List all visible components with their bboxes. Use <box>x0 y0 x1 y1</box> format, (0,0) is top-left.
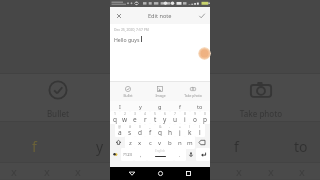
button[interactable]: y <box>130 101 150 111</box>
button[interactable]: Enter <box>196 148 210 161</box>
staticText: Bullet <box>28 108 88 119</box>
button[interactable]: @ <box>115 124 125 137</box>
button[interactable]: 7 <box>170 111 180 124</box>
staticText: , <box>140 152 142 159</box>
staticText: n <box>178 139 182 147</box>
staticText: i <box>184 115 186 124</box>
staticText: 1 <box>114 111 116 116</box>
button[interactable]: 1 <box>110 111 120 124</box>
staticText: Hello guys <box>114 36 140 43</box>
staticText: _ <box>149 124 151 129</box>
button[interactable]: Emoji <box>110 148 121 161</box>
staticText: & <box>159 124 162 129</box>
staticText: w <box>122 115 128 124</box>
button[interactable]: Close <box>112 9 125 22</box>
button[interactable]: 5 <box>150 111 160 124</box>
staticText: d <box>138 128 142 137</box>
button[interactable]: I <box>110 101 130 111</box>
staticText: v <box>158 139 162 147</box>
staticText: + <box>179 124 181 129</box>
staticText: - <box>169 124 171 129</box>
button[interactable]: b <box>165 136 175 149</box>
staticText: e <box>133 115 137 124</box>
button[interactable]: , <box>134 148 147 161</box>
button[interactable]: c <box>145 136 155 149</box>
button[interactable]: Voice input <box>186 148 196 161</box>
button[interactable]: $ <box>135 124 145 137</box>
staticText: s <box>128 128 132 137</box>
button[interactable]: x <box>135 136 145 149</box>
button[interactable]: 6 <box>160 111 170 124</box>
button[interactable]: # <box>125 124 135 137</box>
staticText: to <box>197 103 203 110</box>
button[interactable]: m <box>185 136 195 149</box>
staticText: . <box>179 152 181 159</box>
button[interactable]: Recents <box>182 167 195 180</box>
button[interactable]: v <box>155 136 165 149</box>
button[interactable]: Take photo <box>178 86 208 101</box>
staticText: b <box>168 139 172 147</box>
staticText: 3 <box>134 111 136 116</box>
button[interactable]: 0 <box>200 111 210 124</box>
button[interactable]: _ <box>145 124 155 137</box>
staticText: y <box>163 115 167 124</box>
button[interactable]: z <box>125 136 135 149</box>
button[interactable]: ?123 <box>121 148 134 161</box>
button[interactable]: to <box>190 101 210 111</box>
button[interactable]: n <box>175 136 185 149</box>
staticText: @ <box>118 124 122 129</box>
staticText: f <box>234 137 239 156</box>
button[interactable]: . <box>174 148 186 161</box>
staticText: # <box>129 124 132 129</box>
staticText: p <box>203 115 207 124</box>
staticText: Take photo <box>231 108 291 119</box>
button[interactable]: Backspace <box>195 136 209 149</box>
staticText: 7 <box>174 111 176 116</box>
button[interactable]: & <box>155 124 165 137</box>
button[interactable]: 3 <box>130 111 140 124</box>
staticText: Take photo <box>184 93 202 98</box>
staticText: g <box>158 103 162 110</box>
staticText: ?123 <box>123 152 133 158</box>
staticText: x <box>75 164 81 179</box>
button[interactable]: Image <box>145 86 175 101</box>
staticText: 2 <box>124 111 126 116</box>
staticText: Bullet <box>123 93 133 98</box>
button[interactable]: - <box>165 124 175 137</box>
staticText: x <box>138 139 142 147</box>
staticText: j <box>179 128 181 137</box>
staticText: x <box>236 164 242 179</box>
staticText: m <box>187 139 193 147</box>
staticText: 0 <box>204 111 206 116</box>
button[interactable]: Back <box>125 167 138 180</box>
button[interactable]: 8 <box>180 111 190 124</box>
staticText: a <box>118 128 122 137</box>
staticText: ) <box>199 124 201 129</box>
button[interactable]: Save <box>195 9 208 22</box>
button[interactable]: Space <box>147 148 174 161</box>
button[interactable]: 2 <box>120 111 130 124</box>
staticText: 9 <box>194 111 196 116</box>
staticText: z <box>129 139 132 147</box>
button[interactable]: + <box>175 124 185 137</box>
button[interactable]: 4 <box>140 111 150 124</box>
staticText: x <box>268 164 274 179</box>
staticText: I <box>119 103 121 110</box>
staticText: to <box>294 137 308 156</box>
staticText: 8 <box>184 111 186 116</box>
staticText: 4 <box>144 111 146 116</box>
button[interactable]: Bullet <box>113 86 143 101</box>
button[interactable]: Home <box>154 167 167 180</box>
button[interactable]: Add <box>198 47 211 60</box>
staticText: x <box>11 164 17 179</box>
staticText: 6 <box>164 111 166 116</box>
staticText: u <box>173 115 178 124</box>
staticText: g <box>158 128 162 137</box>
button[interactable]: ) <box>195 124 205 137</box>
button[interactable]: ( <box>185 124 195 137</box>
staticText: o <box>193 115 197 124</box>
button[interactable]: g <box>150 101 170 111</box>
button[interactable]: 9 <box>190 111 200 124</box>
button[interactable]: Shift <box>111 136 125 149</box>
button[interactable]: f <box>170 101 190 111</box>
